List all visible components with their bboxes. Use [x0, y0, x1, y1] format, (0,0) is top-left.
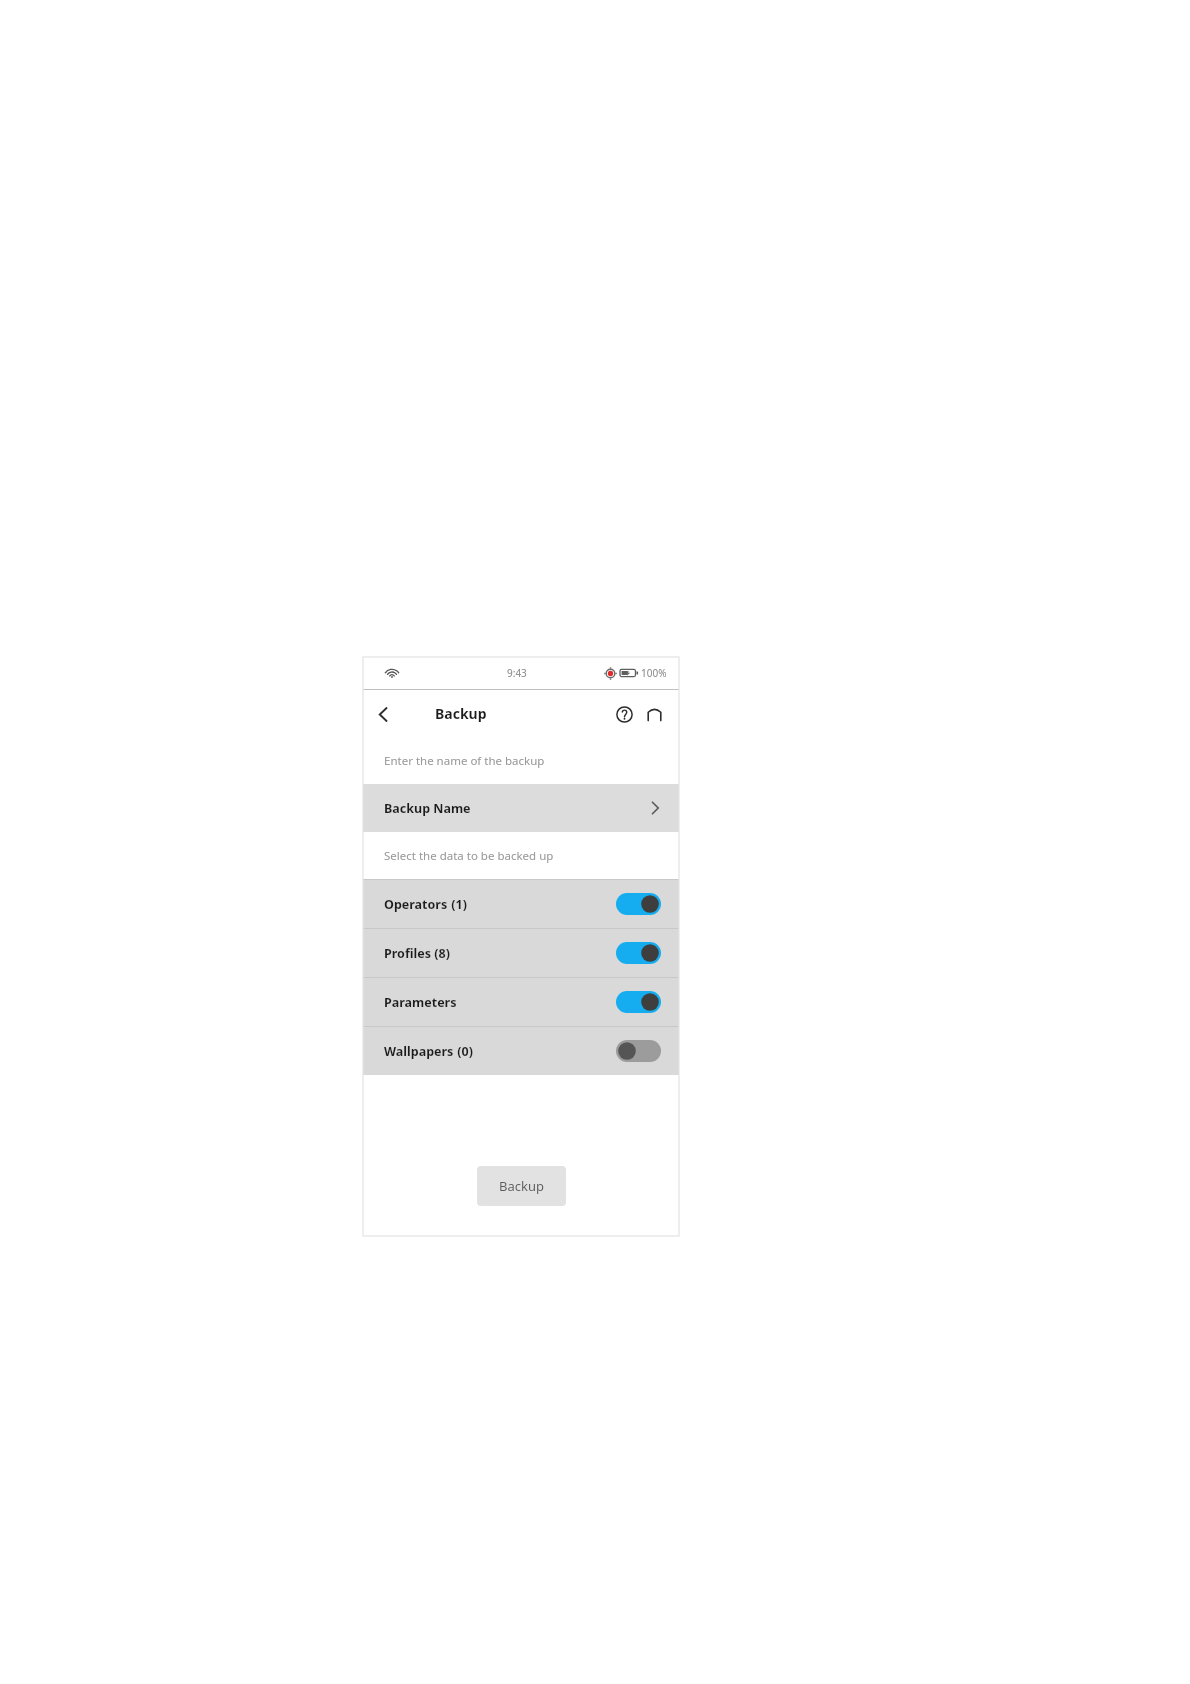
staticText: Backup	[499, 1177, 544, 1195]
staticText: (1)	[448, 896, 467, 913]
staticText: Parameters	[384, 994, 457, 1011]
staticText: (0)	[454, 1043, 473, 1060]
staticText: Enter the name of the backup	[384, 753, 545, 769]
staticText: Select the data to be backed up	[384, 848, 554, 864]
button[interactable]: Backup	[477, 1166, 566, 1206]
button[interactable]: Profiles	[363, 929, 679, 977]
staticText: 100%	[641, 666, 667, 680]
button[interactable]: Help	[609, 699, 639, 729]
button[interactable]: Toggle on	[616, 893, 661, 915]
button[interactable]: Backup Name	[363, 784, 679, 832]
button[interactable]: Back	[363, 694, 403, 734]
button[interactable]: Home	[639, 699, 669, 729]
staticText: (8)	[431, 945, 450, 962]
button[interactable]: Wallpapers	[363, 1027, 679, 1075]
staticText: 9:43	[507, 666, 527, 680]
button[interactable]: Parameters	[363, 978, 679, 1026]
staticText: Backup Name	[384, 800, 647, 817]
button[interactable]: Toggle on	[616, 942, 661, 964]
staticText: Backup	[435, 704, 487, 723]
button[interactable]: Toggle on	[616, 991, 661, 1013]
button[interactable]: Operators	[363, 880, 679, 928]
staticText: Wallpapers	[384, 1043, 454, 1060]
staticText: Profiles	[384, 945, 431, 962]
button[interactable]: Toggle off	[616, 1040, 661, 1062]
staticText: Operators	[384, 896, 448, 913]
